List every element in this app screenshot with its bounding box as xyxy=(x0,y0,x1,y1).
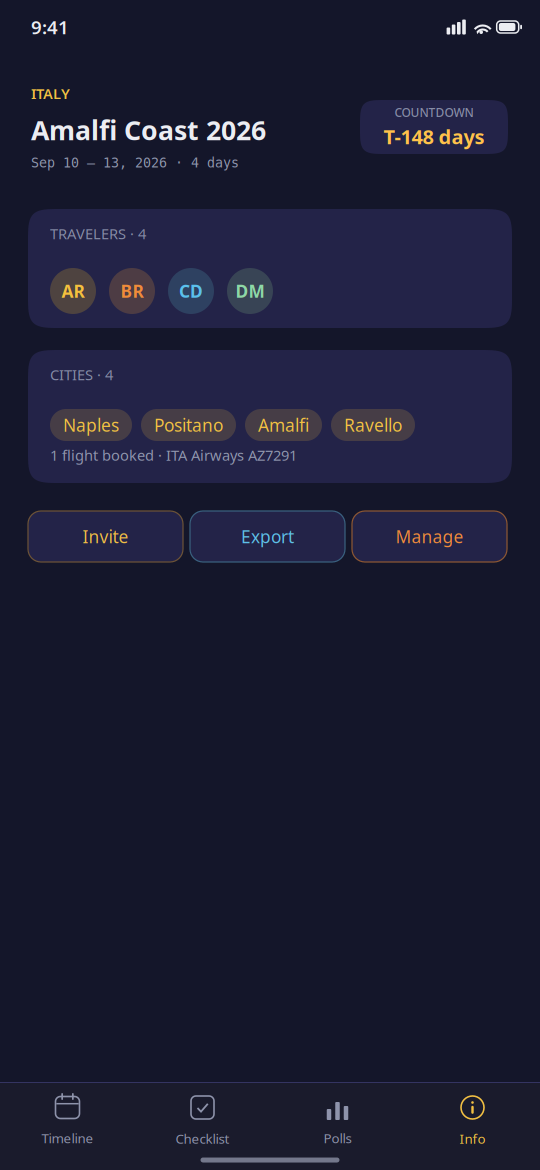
staticText: CD xyxy=(179,279,203,302)
button[interactable]: Amalfi xyxy=(245,409,322,441)
staticText: Amalfi xyxy=(258,413,309,436)
staticText: Timeline xyxy=(41,1129,93,1147)
staticText: 1 flight booked · ITA Airways AZ7291 xyxy=(50,445,297,465)
button[interactable]: Ravello xyxy=(331,409,415,441)
staticText: 9:41 xyxy=(31,15,69,39)
button[interactable]: Manage xyxy=(352,511,507,562)
staticText: Checklist xyxy=(175,1130,229,1147)
staticText: Polls xyxy=(323,1129,351,1147)
staticText: COUNTDOWN xyxy=(394,104,473,120)
staticText: Manage xyxy=(395,525,463,548)
staticText: DM xyxy=(235,279,264,302)
staticText: Ravello xyxy=(344,413,402,436)
button[interactable]: Timeline xyxy=(0,1083,135,1150)
button[interactable]: Positano xyxy=(141,409,236,441)
staticText: Amalfi Coast 2026 xyxy=(31,112,266,148)
staticText: ITALY xyxy=(31,84,70,103)
button[interactable]: Polls xyxy=(270,1083,405,1150)
staticText: Info xyxy=(459,1130,485,1147)
button[interactable]: COUNTDOWN xyxy=(360,100,508,154)
staticText: Naples xyxy=(63,413,119,436)
staticText: TRAVELERS · 4 xyxy=(50,224,146,243)
staticText: Export xyxy=(241,525,294,548)
staticText: CITIES · 4 xyxy=(50,365,113,384)
staticText: BR xyxy=(120,279,143,302)
button[interactable]: Invite xyxy=(28,511,183,562)
staticText: AR xyxy=(61,279,84,302)
button[interactable]: Export xyxy=(190,511,345,562)
button[interactable]: Info xyxy=(405,1082,540,1150)
staticText: Sep 10 — 13, 2026 · 4 days xyxy=(31,155,239,170)
staticText: T-148 days xyxy=(383,123,484,150)
staticText: Invite xyxy=(82,525,128,548)
button[interactable]: Checklist xyxy=(135,1082,270,1150)
staticText: Positano xyxy=(154,413,223,436)
button[interactable]: Naples xyxy=(50,409,132,441)
